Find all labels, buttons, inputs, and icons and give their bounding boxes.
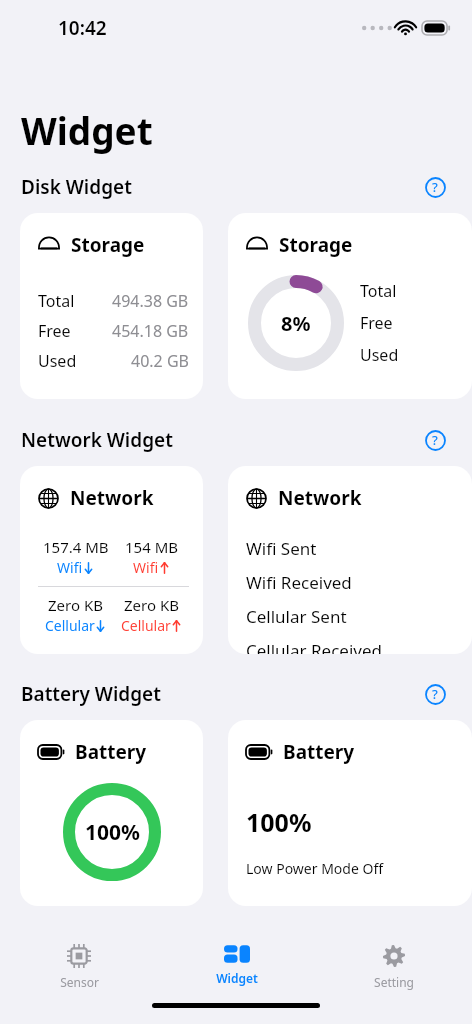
staticText: Disk Widget: [21, 174, 132, 200]
staticText: Network: [278, 485, 362, 511]
staticText: Used: [38, 350, 77, 372]
button[interactable]: Battery: [20, 720, 203, 906]
staticText: 154 MB: [125, 537, 178, 557]
staticText: Setting: [374, 974, 414, 990]
staticText: 8%: [281, 310, 311, 337]
staticText: Network Widget: [21, 427, 173, 453]
staticText: Battery Widget: [21, 681, 161, 707]
staticText: 157.4 MB: [43, 537, 109, 557]
button[interactable]: Network: [228, 466, 472, 654]
staticText: Widget: [216, 970, 258, 986]
staticText: 40.2 GB: [131, 350, 189, 372]
staticText: Battery: [75, 739, 147, 765]
staticText: ?: [432, 431, 438, 449]
button[interactable]: Help about Battery Widget: [420, 679, 450, 709]
button[interactable]: Storage: [228, 213, 472, 399]
staticText: Storage: [279, 232, 353, 258]
staticText: ?: [432, 178, 438, 196]
button[interactable]: Sensor: [0, 932, 158, 994]
staticText: 454.18 GB: [112, 320, 189, 342]
staticText: Cellular: [45, 616, 95, 635]
staticText: Wifi: [133, 558, 159, 577]
staticText: Total: [360, 280, 397, 302]
staticText: Widget: [21, 105, 153, 155]
button[interactable]: Storage: [20, 213, 203, 399]
button[interactable]: Setting: [315, 932, 472, 994]
button[interactable]: Help about Disk Widget: [420, 172, 450, 202]
staticText: 100%: [246, 805, 312, 839]
staticText: Cellular Sent: [246, 605, 347, 628]
staticText: Low Power Mode Off: [246, 859, 384, 878]
staticText: Zero KB: [124, 595, 179, 615]
staticText: 10:42: [58, 15, 107, 41]
button[interactable]: Help about Network Widget: [420, 425, 450, 455]
button[interactable]: Widget: [158, 932, 315, 994]
staticText: Wifi Sent: [246, 537, 317, 560]
staticText: Network: [70, 485, 154, 511]
staticText: Wifi Received: [246, 571, 352, 594]
staticText: Free: [38, 320, 71, 342]
staticText: 494.38 GB: [112, 290, 189, 312]
staticText: Sensor: [60, 974, 99, 990]
staticText: Cellular Received: [246, 639, 382, 654]
staticText: Free: [360, 312, 393, 334]
staticText: ?: [432, 685, 438, 703]
staticText: Total: [38, 290, 75, 312]
staticText: Used: [360, 344, 399, 366]
staticText: Wifi: [57, 558, 83, 577]
staticText: 100%: [85, 818, 140, 847]
staticText: Zero KB: [48, 595, 103, 615]
button[interactable]: Battery: [228, 720, 472, 906]
staticText: Storage: [71, 232, 145, 258]
staticText: Cellular: [121, 616, 171, 635]
button[interactable]: Network: [20, 466, 203, 654]
staticText: Battery: [283, 739, 355, 765]
